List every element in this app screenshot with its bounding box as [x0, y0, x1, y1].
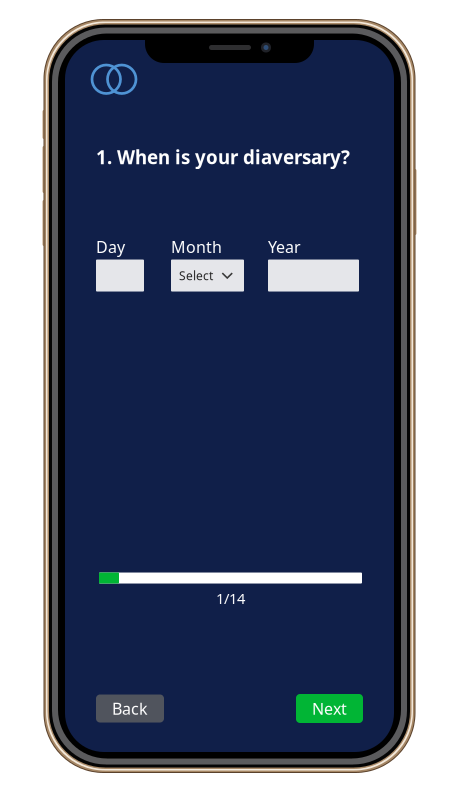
staticText: Back [112, 698, 148, 719]
staticText: Select [179, 268, 213, 283]
staticText: Day [96, 236, 125, 257]
button[interactable]: Day [96, 259, 144, 291]
staticText: Month [171, 236, 222, 257]
staticText: Year [268, 236, 301, 257]
staticText: Next [312, 698, 347, 719]
button[interactable]: Next [296, 694, 363, 723]
button[interactable]: Select [171, 259, 244, 291]
button[interactable]: Year [268, 259, 359, 291]
button[interactable]: Back [96, 694, 164, 722]
staticText: 1/14 [216, 588, 245, 608]
staticText: 1. When is your diaversary? [96, 144, 350, 169]
